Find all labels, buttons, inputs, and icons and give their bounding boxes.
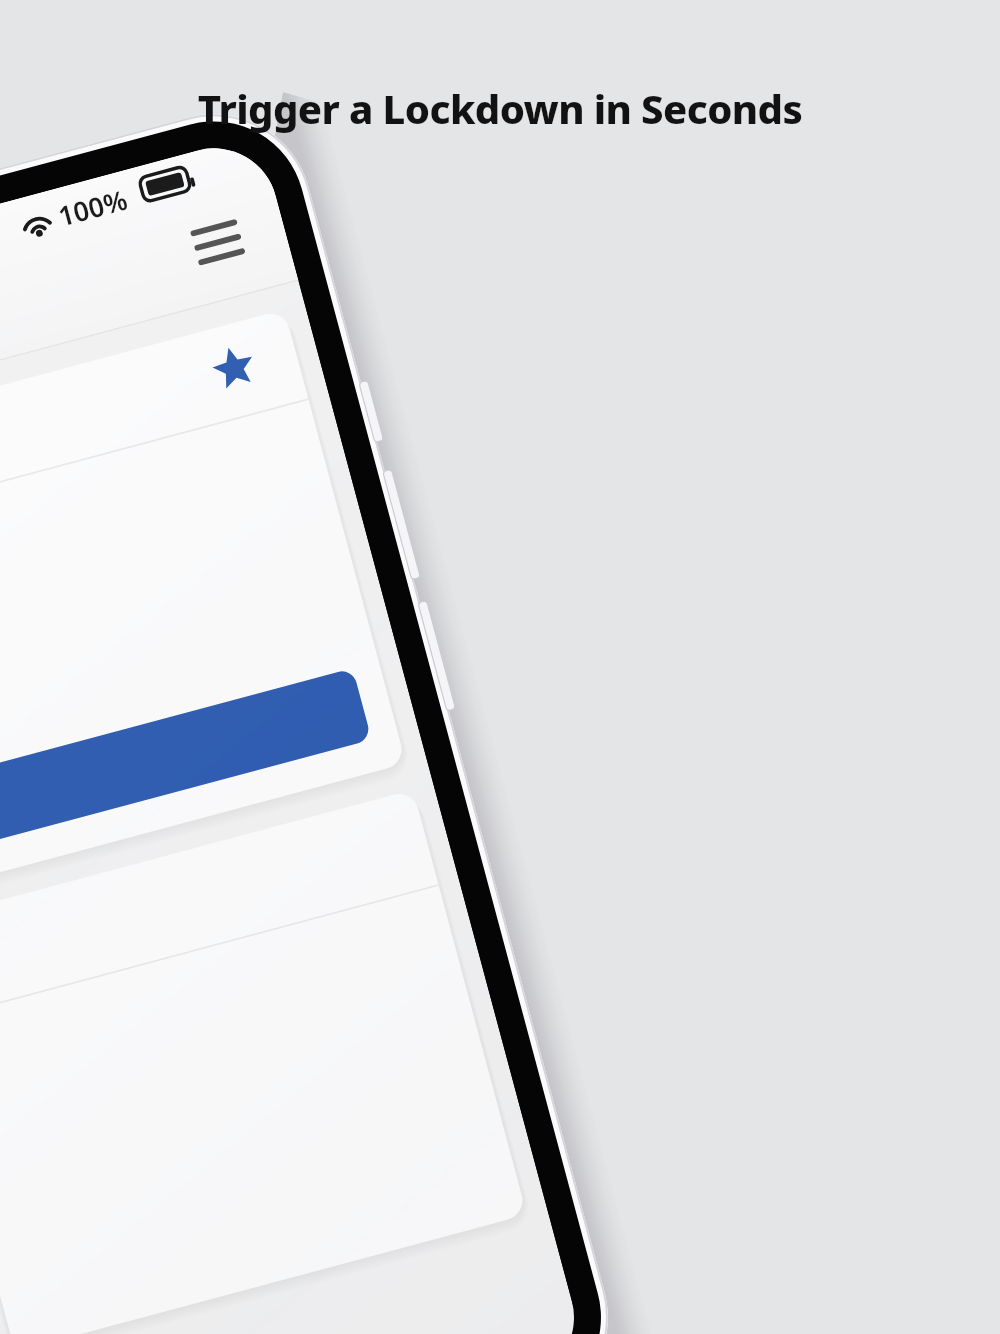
button[interactable]: Trigger a Lockdown in Seconds	[0, 0, 1000, 1334]
